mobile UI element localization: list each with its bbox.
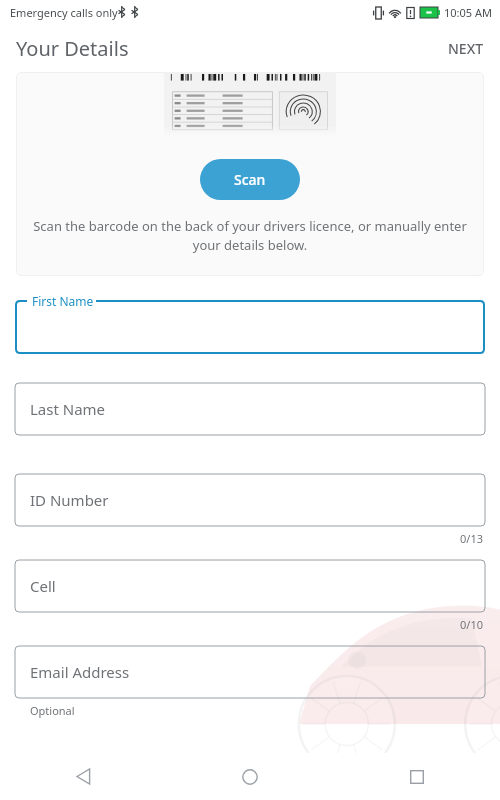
staticText: Scan the barcode on the back of your dri… — [28, 217, 472, 254]
button[interactable]: Back — [0, 753, 166, 800]
staticText: First Name — [32, 293, 94, 309]
staticText: Cell — [30, 576, 56, 596]
staticText: 10:05 AM — [444, 5, 492, 20]
button[interactable]: Cell — [15, 560, 485, 612]
button[interactable]: Last Name — [15, 383, 485, 435]
button[interactable]: Scan — [200, 159, 300, 200]
staticText: Email Address — [30, 662, 130, 682]
staticText: Last Name — [30, 399, 106, 419]
staticText: 0/10 — [460, 617, 483, 632]
staticText: 0/13 — [460, 531, 483, 546]
staticText: Optional — [30, 703, 75, 718]
staticText: NEXT — [448, 39, 484, 58]
staticText: Scan — [234, 170, 266, 189]
button[interactable]: Home — [166, 753, 333, 800]
staticText: ID Number — [30, 490, 109, 510]
button[interactable]: First Name — [15, 300, 485, 354]
button[interactable]: ID Number — [15, 474, 485, 526]
staticText: Emergency calls only — [10, 5, 118, 20]
staticText: Your Details — [16, 35, 129, 62]
button[interactable]: Recent apps — [333, 753, 500, 800]
button[interactable]: NEXT — [432, 27, 500, 70]
button[interactable]: Email Address — [15, 646, 485, 698]
